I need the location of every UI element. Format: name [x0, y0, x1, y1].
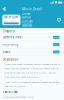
staticText: Description [3, 57, 19, 61]
staticText: INCEPTION [4, 16, 18, 19]
staticText: Play [54, 51, 58, 53]
staticText: 8.8 / 10 [23, 24, 31, 27]
button[interactable]: Limbo [0, 48, 64, 56]
staticText: Cast & Crew [3, 90, 18, 94]
button[interactable]: The briefing [0, 41, 64, 48]
staticText: Dream within [22, 12, 31, 19]
staticText: Play [54, 36, 58, 39]
staticText: The briefing [3, 43, 19, 46]
staticText: Chapters [3, 29, 15, 33]
staticText: A thief who steals corporate secrets thr… [4, 63, 60, 78]
staticText: Play [54, 43, 58, 46]
staticText: Limbo [3, 50, 11, 54]
button[interactable]: Add to favorites [56, 17, 62, 23]
staticText: Directed by Christopher Nolan [3, 95, 34, 98]
staticText: Note: this title contains flashing image… [5, 80, 59, 88]
staticText: a dream [22, 20, 32, 23]
staticText: Movie Detail [22, 7, 42, 11]
staticText: Opening heist [3, 36, 22, 39]
staticText: 2010 · Sci-Fi [4, 20, 17, 22]
button[interactable]: Opening heist [0, 34, 64, 41]
button[interactable]: Back [1, 5, 8, 12]
